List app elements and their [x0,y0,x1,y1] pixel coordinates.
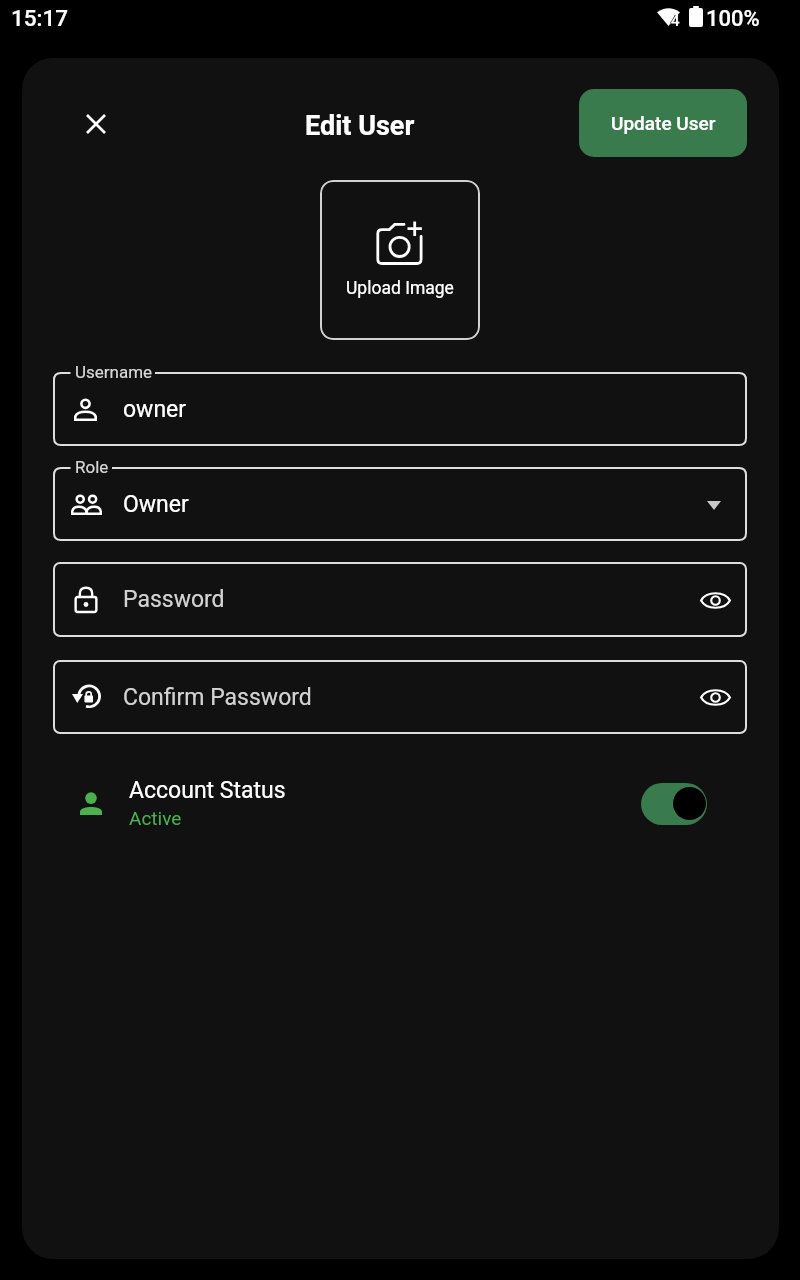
staticText: Update User [611,112,716,134]
button[interactable]: Account Status [62,770,718,838]
staticText: Role [75,457,109,477]
staticText: 4 [672,12,681,30]
staticText: Username [75,362,153,382]
button[interactable]: Account status [641,783,707,825]
button[interactable]: owner [53,372,747,446]
staticText: Edit User [305,110,415,142]
staticText: owner [123,396,187,423]
staticText: Confirm Password [123,684,312,711]
button[interactable]: Upload Image [320,180,480,340]
button[interactable]: Close [72,100,120,148]
staticText: Account Status [129,777,286,804]
button[interactable]: Toggle password visibility [53,660,747,734]
button[interactable]: Toggle password visibility [53,562,747,637]
staticText: Password [123,586,225,613]
staticText: 4 [671,12,680,30]
button[interactable]: Select role [53,467,747,541]
staticText: Active [129,807,182,829]
button[interactable]: Toggle password visibility [692,674,738,720]
button[interactable]: Toggle password visibility [692,577,738,623]
staticText: 100% [706,6,760,32]
staticText: Owner [123,491,189,518]
button[interactable]: Update User [579,89,747,157]
staticText: 4 [670,12,679,30]
staticText: 15:17 [11,5,69,31]
button[interactable]: Select role [694,484,734,524]
staticText: Upload Image [346,278,454,299]
